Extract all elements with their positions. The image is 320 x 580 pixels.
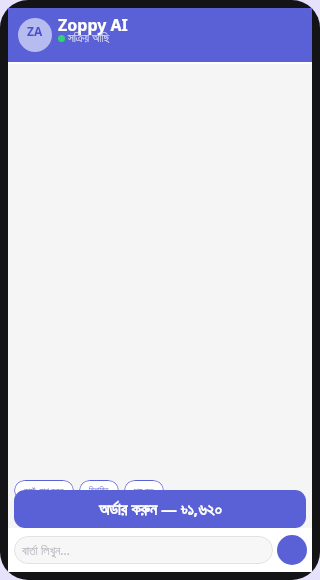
staticText: দাম কত [134,485,154,496]
button[interactable]: অর্ডার করুন — ৳১,৬২০ [14,490,306,528]
staticText: সক্রিয় আছি [68,30,110,46]
staticText: ZA [27,23,43,39]
staticText: অর্ডার করুন — ৳১,৬২০ [99,498,222,520]
button[interactable]: বিস্তারিত [79,480,119,501]
button[interactable]: কার্টে যোগ করুন [14,480,74,501]
staticText: কার্টে যোগ করুন [24,485,64,496]
staticText: Zoppy AI [58,14,128,36]
staticText: বিস্তারিত [89,487,109,495]
button[interactable]: Send [277,535,307,565]
button[interactable]: বার্তা লিখুন... [14,536,273,564]
button[interactable]: দাম কত [124,480,164,501]
staticText: বার্তা লিখুন... [22,542,70,558]
button[interactable]: ZA [8,8,312,62]
